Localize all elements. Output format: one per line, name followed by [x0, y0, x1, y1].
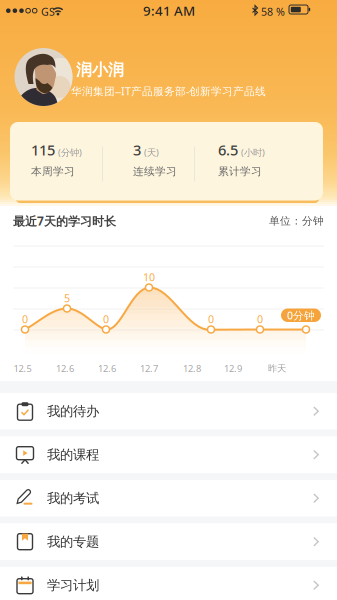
staticText: 我的考试: [47, 490, 99, 506]
staticText: 12.5: [13, 362, 31, 375]
staticText: 最近7天的学习时长: [13, 213, 116, 229]
staticText: (分钟): [58, 146, 82, 158]
staticText: 润小润: [76, 60, 124, 80]
button[interactable]: 我的待办: [0, 393, 337, 429]
staticText: (小时): [241, 146, 265, 158]
staticText: 12.6: [98, 362, 116, 375]
staticText: 我的课程: [47, 447, 99, 463]
staticText: 华润集团--IT产品服务部-创新学习产品线: [71, 84, 266, 98]
staticText: 5: [64, 291, 70, 305]
staticText: 0分钟: [287, 308, 315, 322]
staticText: 115: [31, 140, 55, 159]
staticText: 58 %: [261, 4, 285, 19]
button[interactable]: 我的考试: [0, 480, 337, 516]
staticText: 6.5: [218, 140, 238, 159]
staticText: 连续学习: [133, 165, 177, 178]
staticText: 0: [22, 312, 28, 326]
button[interactable]: 学习计划: [0, 567, 337, 600]
button[interactable]: 我的专题: [0, 523, 337, 560]
staticText: 12.7: [140, 362, 158, 375]
staticText: 3: [133, 140, 141, 159]
staticText: 昨天: [268, 363, 286, 374]
staticText: (天): [144, 146, 159, 158]
staticText: 学习计划: [47, 577, 99, 593]
staticText: 0: [257, 312, 263, 326]
staticText: 0: [103, 312, 109, 326]
staticText: 单位：分钟: [269, 214, 324, 227]
staticText: 累计学习: [218, 165, 262, 178]
staticText: 本周学习: [31, 165, 75, 178]
staticText: 12.8: [183, 362, 201, 375]
button[interactable]: 我的课程: [0, 436, 337, 473]
staticText: 0: [208, 312, 214, 326]
staticText: GS: [41, 4, 55, 19]
staticText: 12.9: [224, 362, 242, 375]
staticText: 我的专题: [47, 534, 99, 550]
staticText: 10: [143, 270, 155, 284]
staticText: 12.6: [56, 362, 74, 375]
staticText: 我的待办: [47, 403, 99, 419]
staticText: 9:41 AM: [143, 2, 195, 19]
